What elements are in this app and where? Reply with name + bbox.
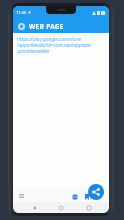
button[interactable]: Recents <box>82 202 96 213</box>
button[interactable]: Back <box>27 202 41 213</box>
button[interactable]: https://play.google.com/store /apps/deta… <box>17 36 92 54</box>
button[interactable]: Bookmark <box>82 192 91 201</box>
button[interactable]: Share <box>88 184 104 200</box>
button[interactable]: Home <box>54 202 68 213</box>
button[interactable]: Menu <box>17 192 25 200</box>
staticText: WEB PAGE <box>29 22 64 31</box>
button[interactable]: Menu <box>17 22 26 31</box>
button[interactable]: Web <box>70 192 79 201</box>
staticText: 11:06 <box>16 10 27 15</box>
